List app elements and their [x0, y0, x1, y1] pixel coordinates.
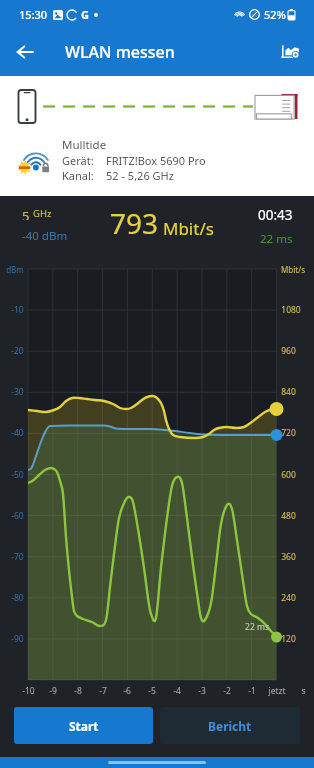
staticText: dBm — [6, 264, 24, 275]
staticText: 22 ms — [245, 621, 269, 633]
staticText: -3 — [198, 685, 206, 697]
staticText: WLAN messen — [65, 41, 175, 63]
staticText: 15:30 — [19, 7, 48, 22]
staticText: jetzt — [268, 685, 286, 697]
staticText: -60 — [11, 510, 24, 522]
button[interactable]: Diagramm-Einstellungen — [275, 37, 305, 67]
staticText: 52% — [264, 7, 286, 22]
staticText: -50 — [11, 469, 24, 481]
staticText: Bericht — [208, 718, 252, 734]
staticText: s — [301, 685, 306, 697]
staticText: 52 - 5,26 GHz — [106, 168, 174, 183]
staticText: Gerät: — [62, 153, 94, 168]
staticText: -10 — [11, 304, 24, 316]
staticText: 00:43 — [258, 206, 293, 224]
staticText: Mbit/s — [281, 264, 305, 275]
staticText: 5 — [22, 207, 30, 220]
staticText: -40 — [11, 427, 24, 439]
staticText: -30 — [11, 386, 24, 398]
staticText: Kanal: — [62, 168, 94, 183]
staticText: 960 — [281, 345, 296, 357]
button[interactable]: Zurück — [9, 36, 41, 68]
staticText: -80 — [11, 592, 24, 604]
staticText: -1 — [248, 685, 256, 697]
staticText: -5 — [148, 685, 156, 697]
staticText: 600 — [281, 469, 296, 481]
staticText: -40 dBm — [22, 228, 68, 244]
staticText: -10 — [22, 685, 35, 697]
staticText: -4 — [173, 685, 181, 697]
staticText: FRITZ!Box 5690 Pro — [106, 153, 206, 168]
staticText: G — [81, 7, 89, 22]
staticText: 1080 — [281, 304, 301, 316]
staticText: -20 — [11, 345, 24, 357]
staticText: 720 — [281, 427, 296, 439]
staticText: 480 — [281, 510, 296, 522]
staticText: -9 — [49, 685, 57, 697]
staticText: Mulltide — [62, 137, 107, 153]
staticText: 360 — [281, 551, 296, 563]
staticText: -90 — [11, 633, 24, 645]
staticText: -2 — [223, 685, 231, 697]
staticText: GHz — [33, 207, 52, 220]
staticText: 120 — [281, 633, 296, 645]
staticText: -8 — [74, 685, 82, 697]
staticText: Mbit/s — [163, 217, 214, 240]
staticText: Start — [69, 718, 99, 734]
staticText: 793 — [110, 204, 159, 242]
staticText: 840 — [281, 386, 296, 398]
button[interactable]: Bericht — [160, 707, 300, 744]
staticText: 22 ms — [260, 231, 293, 247]
staticText: -6 — [123, 685, 131, 697]
staticText: 240 — [281, 592, 296, 604]
staticText: -70 — [11, 551, 24, 563]
staticText: -7 — [99, 685, 107, 697]
button[interactable]: Start — [14, 707, 153, 744]
